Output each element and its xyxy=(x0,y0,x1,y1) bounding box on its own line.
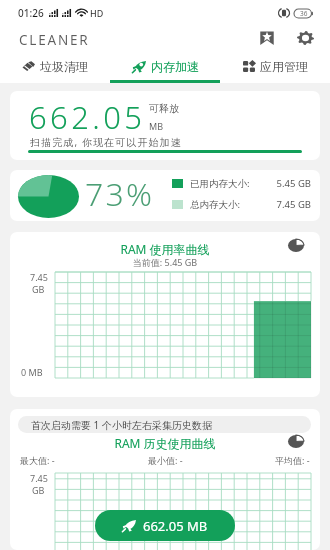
staticText: MB xyxy=(149,120,164,132)
staticText: RAM 使用率曲线 xyxy=(10,241,320,257)
staticText: 662.05 MB xyxy=(143,517,208,535)
staticText: 7.45 GB xyxy=(270,198,311,211)
staticText: 73% xyxy=(85,172,155,216)
staticText: 7.45 xyxy=(30,271,48,283)
staticText: 01:26 xyxy=(18,6,44,20)
button[interactable]: Settings xyxy=(292,25,318,51)
staticText: RAM 历史使用曲线 xyxy=(10,435,320,451)
staticText: 应用管理 xyxy=(260,59,308,74)
staticText: 662.05 xyxy=(29,96,146,138)
staticText: 0 MB xyxy=(21,366,43,378)
staticText: 垃圾清理 xyxy=(40,59,88,74)
staticText: 5.45 GB xyxy=(270,177,311,190)
button[interactable]: 垃圾清理 xyxy=(0,53,110,83)
staticText: CLEANER xyxy=(19,31,90,49)
staticText: 内存加速 xyxy=(151,59,199,74)
button[interactable]: Bookmark xyxy=(254,25,280,51)
staticText: 36 xyxy=(300,9,308,18)
button[interactable]: Chart style xyxy=(286,237,306,253)
staticText: GB xyxy=(32,283,45,295)
staticText: 平均值: - xyxy=(275,454,310,466)
staticText: 扫描完成, 你现在可以开始加速 xyxy=(30,135,182,149)
staticText: 7.45 xyxy=(30,472,48,484)
staticText: 最大值: - xyxy=(20,454,55,466)
staticText: 最小值: - xyxy=(148,454,183,466)
staticText: 总内存大小: xyxy=(190,198,241,211)
button[interactable]: 662.05 MB xyxy=(95,510,235,541)
staticText: 可释放 xyxy=(149,102,179,115)
button[interactable]: Chart style history xyxy=(286,433,306,449)
staticText: 已用内存大小: xyxy=(190,177,250,190)
staticText: 首次启动需要 1 个小时左右采集历史数据 xyxy=(31,418,212,432)
staticText: 当前值: 5.45 GB xyxy=(10,256,320,268)
button[interactable]: 内存加速 xyxy=(110,53,220,83)
staticText: GB xyxy=(32,484,45,496)
button[interactable]: 应用管理 xyxy=(220,53,330,83)
staticText: HD xyxy=(90,7,104,19)
